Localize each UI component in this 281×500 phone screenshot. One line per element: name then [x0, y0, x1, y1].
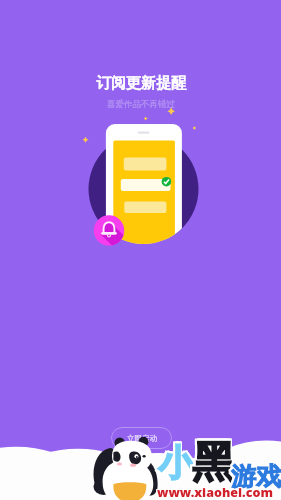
staticText: 小	[159, 438, 195, 483]
staticText: 游戏	[232, 460, 281, 491]
staticText: 小	[159, 440, 195, 485]
staticText: 黑	[190, 434, 233, 488]
staticText: 喜爱作品不再错过	[107, 99, 175, 110]
staticText: 游戏	[229, 460, 279, 491]
staticText: 小	[156, 442, 192, 487]
staticText: 游戏	[232, 461, 281, 492]
staticText: 黑	[190, 436, 233, 490]
staticText: 小	[158, 438, 194, 483]
staticText: 黑	[192, 434, 235, 488]
staticText: 小	[158, 440, 194, 485]
staticText: 小	[156, 438, 192, 483]
staticText: 黑	[193, 434, 236, 488]
staticText: www.xiaohei.com	[158, 485, 274, 500]
staticText: 黑	[192, 438, 235, 492]
staticText: 小	[158, 442, 194, 487]
staticText: 黑	[193, 438, 236, 492]
staticText: www.xiaohei.com	[157, 483, 273, 500]
staticText: www.xiaohei.com	[156, 484, 272, 500]
staticText: 小	[159, 442, 195, 487]
staticText: 游戏	[232, 463, 281, 494]
button[interactable]: 立即启动	[111, 427, 172, 449]
staticText: www.xiaohei.com	[158, 483, 274, 500]
staticText: www.xiaohei.com	[156, 485, 272, 500]
staticText: 游戏	[231, 460, 281, 491]
staticText: 小	[156, 440, 192, 485]
staticText: 游戏	[229, 461, 279, 492]
staticText: www.xiaohei.com	[157, 484, 273, 500]
staticText: 黑	[190, 438, 233, 492]
staticText: 黑	[192, 436, 235, 490]
staticText: www.xiaohei.com	[158, 484, 274, 500]
staticText: www.xiaohei.com	[156, 483, 272, 500]
staticText: 订阅更新提醒	[96, 74, 186, 93]
staticText: www.xiaohei.com	[157, 485, 273, 500]
staticText: 游戏	[231, 461, 281, 492]
staticText: 立即启动	[127, 434, 157, 443]
staticText: 黑	[193, 436, 236, 490]
staticText: 游戏	[229, 463, 279, 494]
staticText: 游戏	[231, 463, 281, 494]
